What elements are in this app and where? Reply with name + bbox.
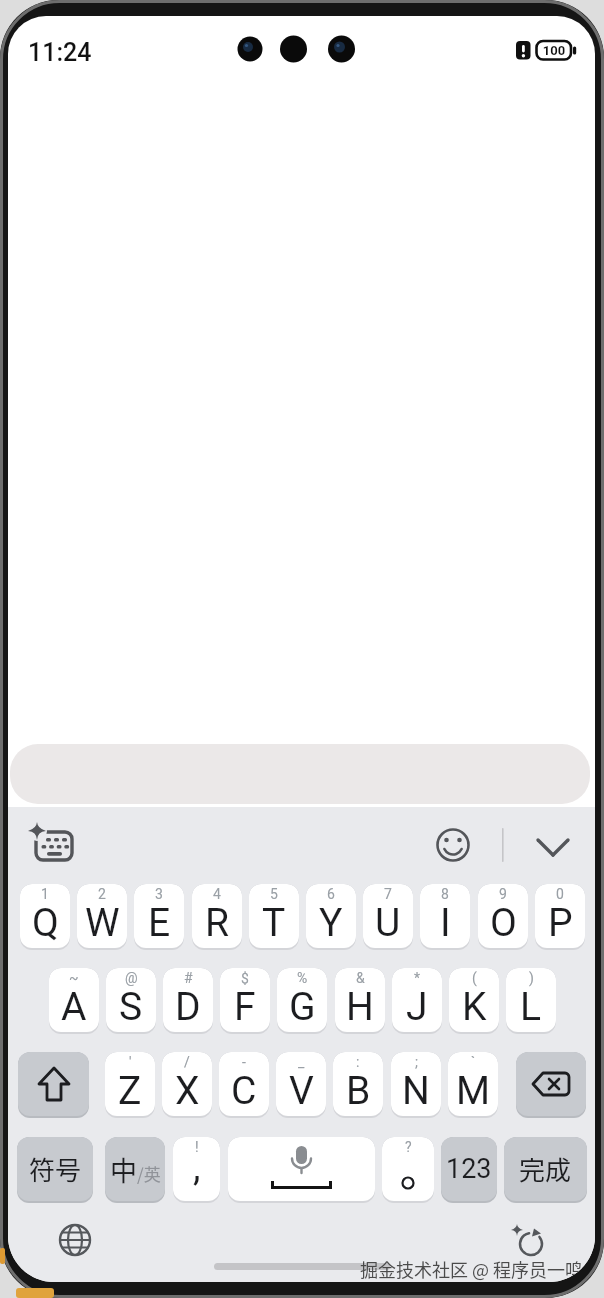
staticText: ( — [472, 970, 477, 986]
button[interactable]: 5 — [249, 884, 299, 950]
staticText: B — [346, 1068, 371, 1114]
staticText: J — [406, 984, 428, 1030]
staticText: 11:24 — [28, 38, 92, 67]
staticText: , — [193, 1145, 201, 1190]
staticText: ? — [405, 1139, 412, 1155]
staticText: 2 — [98, 886, 106, 902]
staticText: S — [119, 984, 143, 1030]
staticText: 3 — [155, 886, 163, 902]
staticText: I — [440, 900, 451, 946]
staticText: D — [175, 984, 201, 1030]
staticText: M — [456, 1068, 491, 1114]
button[interactable]: ? — [382, 1137, 434, 1203]
staticText: # — [184, 970, 193, 986]
staticText: 100 — [539, 43, 569, 59]
button[interactable]: : — [333, 1052, 383, 1118]
staticText: ' — [129, 1054, 132, 1070]
staticText: 5 — [270, 886, 278, 902]
staticText: 7 — [384, 886, 392, 902]
button[interactable]: $ — [220, 968, 270, 1034]
staticText: H — [346, 984, 374, 1030]
staticText: 中/英 — [110, 1150, 161, 1189]
staticText: 掘金技术社区 @ 程序员一鸣 — [360, 1256, 584, 1282]
staticText: * — [414, 970, 421, 986]
staticText: Y — [319, 900, 343, 946]
staticText: 1 — [41, 886, 49, 902]
staticText: / — [184, 1054, 190, 1070]
button[interactable]: 符号 — [17, 1137, 93, 1203]
button[interactable]: ~ — [49, 968, 99, 1034]
button[interactable]: 完成 — [504, 1137, 587, 1203]
button[interactable] — [433, 824, 475, 866]
button[interactable]: _ — [276, 1052, 326, 1118]
staticText: 符号 — [29, 1150, 82, 1188]
staticText: G — [289, 984, 316, 1030]
button[interactable]: / — [162, 1052, 212, 1118]
button[interactable]: # — [163, 968, 213, 1034]
staticText: ~ — [69, 970, 79, 986]
staticText: E — [148, 900, 171, 946]
button[interactable]: 2 — [77, 884, 127, 950]
staticText: % — [297, 970, 308, 986]
staticText: P — [548, 900, 573, 946]
staticText: ! — [195, 1139, 199, 1155]
staticText: 123 — [446, 1153, 492, 1185]
button[interactable]: @ — [106, 968, 156, 1034]
button[interactable] — [28, 822, 80, 868]
button[interactable]: 1 — [20, 884, 70, 950]
button[interactable] — [516, 1052, 586, 1118]
staticText: 6 — [327, 886, 335, 902]
staticText: - — [242, 1054, 246, 1070]
staticText: F — [234, 984, 256, 1030]
staticText: Q — [32, 900, 59, 946]
staticText: 9 — [499, 886, 507, 902]
button[interactable]: 中/英 — [105, 1137, 165, 1203]
button[interactable]: 4 — [192, 884, 242, 950]
button[interactable] — [10, 744, 590, 804]
button[interactable] — [228, 1137, 375, 1203]
staticText: _ — [298, 1054, 305, 1070]
staticText: 8 — [441, 886, 449, 902]
staticText: ; — [415, 1054, 418, 1070]
staticText: X — [175, 1068, 200, 1114]
staticText: N — [402, 1068, 430, 1114]
button[interactable]: ' — [105, 1052, 155, 1118]
staticText: U — [375, 900, 401, 946]
button[interactable]: - — [219, 1052, 269, 1118]
button[interactable]: 7 — [363, 884, 413, 950]
button[interactable]: * — [392, 968, 442, 1034]
button[interactable]: 123 — [441, 1137, 497, 1203]
staticText: T — [262, 900, 286, 946]
staticText: ` — [471, 1054, 476, 1070]
staticText: R — [205, 900, 230, 946]
staticText: O — [490, 900, 517, 946]
staticText: A — [61, 984, 87, 1030]
button[interactable]: 0 — [535, 884, 585, 950]
button[interactable]: & — [335, 968, 385, 1034]
button[interactable] — [56, 1221, 112, 1273]
button[interactable] — [18, 1052, 89, 1118]
staticText: ) — [529, 970, 534, 986]
button[interactable]: % — [277, 968, 327, 1034]
staticText: : — [356, 1054, 360, 1070]
button[interactable]: 8 — [420, 884, 470, 950]
staticText: 4 — [213, 886, 221, 902]
button[interactable]: 3 — [134, 884, 184, 950]
button[interactable] — [531, 824, 575, 866]
staticText: C — [231, 1068, 257, 1114]
staticText: L — [520, 984, 542, 1030]
button[interactable]: ( — [449, 968, 499, 1034]
button[interactable]: 9 — [478, 884, 528, 950]
staticText: & — [356, 970, 365, 986]
button[interactable]: ! — [173, 1137, 220, 1203]
button[interactable] — [508, 1221, 558, 1271]
staticText: K — [462, 984, 487, 1030]
staticText: @ — [125, 970, 138, 986]
button[interactable]: ) — [506, 968, 556, 1034]
staticText: 0 — [556, 886, 564, 902]
staticText: Z — [118, 1068, 142, 1114]
button[interactable]: ; — [391, 1052, 441, 1118]
staticText: W — [85, 900, 120, 946]
button[interactable]: 6 — [306, 884, 356, 950]
button[interactable]: ` — [448, 1052, 498, 1118]
